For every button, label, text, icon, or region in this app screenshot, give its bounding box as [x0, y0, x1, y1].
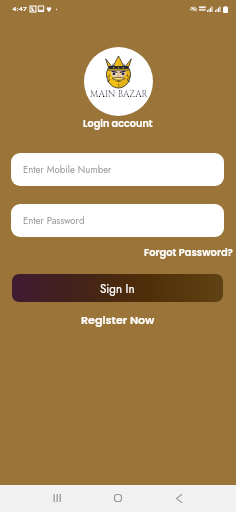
staticText: Enter Mobile Number: [23, 163, 112, 177]
staticText: 4:47: [12, 4, 27, 14]
staticText: Login account: [83, 117, 153, 131]
button[interactable]: Forgot Password?: [143, 244, 234, 262]
staticText: MAIN BAZAR: [90, 88, 148, 100]
button[interactable]: Register Now: [79, 310, 157, 330]
button[interactable]: Home: [98, 488, 138, 508]
staticText: Sign In: [100, 281, 135, 298]
staticText: Register Now: [81, 312, 155, 328]
button[interactable]: Enter Mobile Number: [11, 153, 224, 186]
staticText: Enter Password: [23, 214, 85, 228]
button[interactable]: Back: [159, 488, 199, 508]
button[interactable]: Sign In: [12, 274, 223, 302]
button[interactable]: Recent apps: [37, 488, 77, 508]
staticText: Forgot Password?: [144, 246, 233, 260]
button[interactable]: Enter Password: [11, 204, 224, 237]
